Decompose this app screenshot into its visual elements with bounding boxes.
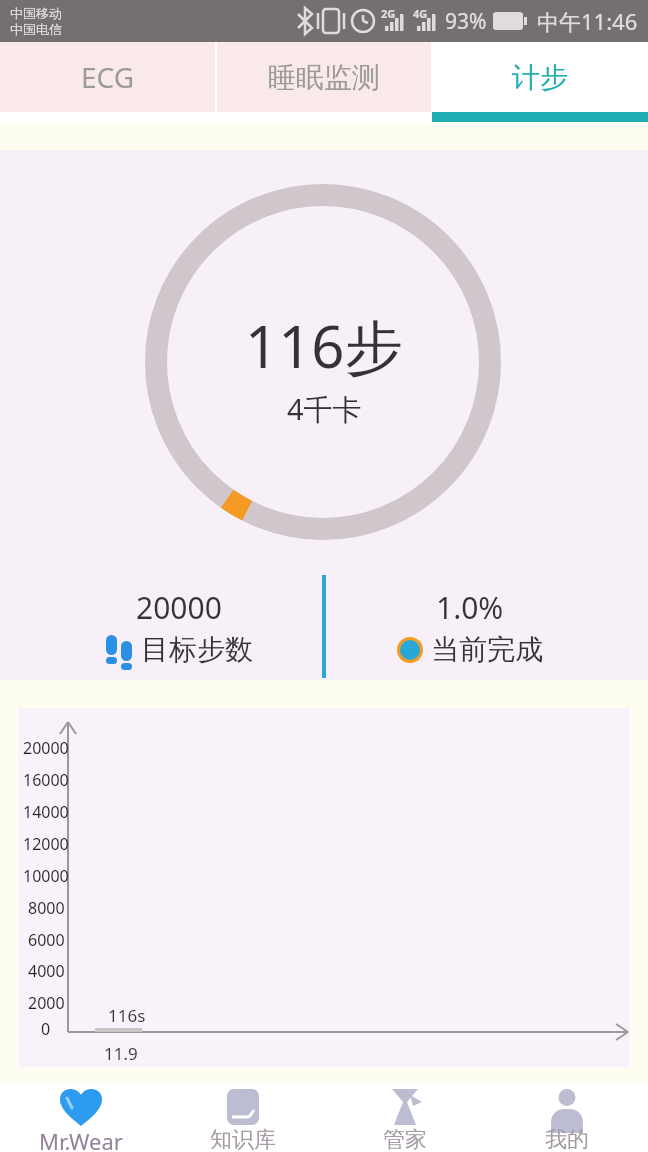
button[interactable]: 计步	[432, 42, 648, 112]
staticText: 10000	[23, 865, 69, 887]
button[interactable]: 知识库	[162, 1084, 324, 1152]
staticText: 我的	[545, 1126, 589, 1152]
button[interactable]: 睡眠监测	[217, 42, 431, 112]
staticText: 2000	[28, 992, 65, 1014]
staticText: 8000	[28, 897, 65, 919]
staticText: 12000	[23, 833, 69, 855]
button[interactable]: 我的	[486, 1084, 648, 1152]
staticText: 93%	[445, 7, 487, 36]
staticText: 当前完成	[431, 632, 543, 667]
staticText: 2G	[381, 6, 396, 21]
staticText: 目标步数	[141, 632, 253, 667]
button[interactable]: Mr.Wear	[0, 1084, 162, 1152]
staticText: 中国电信	[10, 21, 62, 37]
staticText: 计步	[512, 60, 568, 95]
staticText: 116步	[245, 306, 403, 385]
staticText: 中国移动	[10, 5, 62, 21]
staticText: 0	[41, 1018, 51, 1040]
button[interactable]: 管家	[324, 1084, 486, 1152]
staticText: 4000	[28, 960, 65, 982]
staticText: 116s	[108, 1004, 146, 1027]
staticText: 知识库	[210, 1126, 276, 1152]
staticText: 中午11:46	[537, 6, 638, 36]
staticText: 4G	[413, 6, 428, 21]
staticText: 1.0%	[436, 587, 504, 628]
staticText: 14000	[23, 801, 69, 823]
staticText: 6000	[28, 929, 65, 951]
staticText: 4千卡	[287, 389, 362, 429]
staticText: 管家	[383, 1126, 427, 1152]
staticText: ECG	[81, 58, 135, 96]
staticText: 16000	[23, 769, 69, 791]
staticText: 11.9	[104, 1042, 138, 1065]
staticText: Mr.Wear	[39, 1126, 123, 1152]
staticText: 睡眠监测	[268, 60, 380, 95]
button[interactable]: ECG	[0, 42, 215, 112]
staticText: 20000	[136, 587, 222, 628]
staticText: 20000	[23, 737, 69, 759]
